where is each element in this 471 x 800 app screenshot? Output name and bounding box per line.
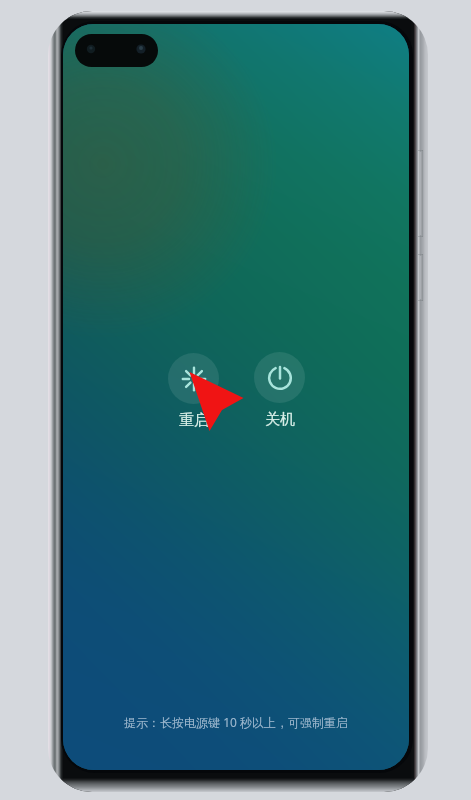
staticText: 提示：长按电源键 10 秒以上，可强制重启 (124, 714, 348, 730)
button[interactable]: 关机 (254, 352, 305, 403)
button[interactable]: 重启 (168, 353, 219, 404)
staticText: 关机 (265, 410, 295, 429)
staticText: 重启 (179, 411, 209, 430)
